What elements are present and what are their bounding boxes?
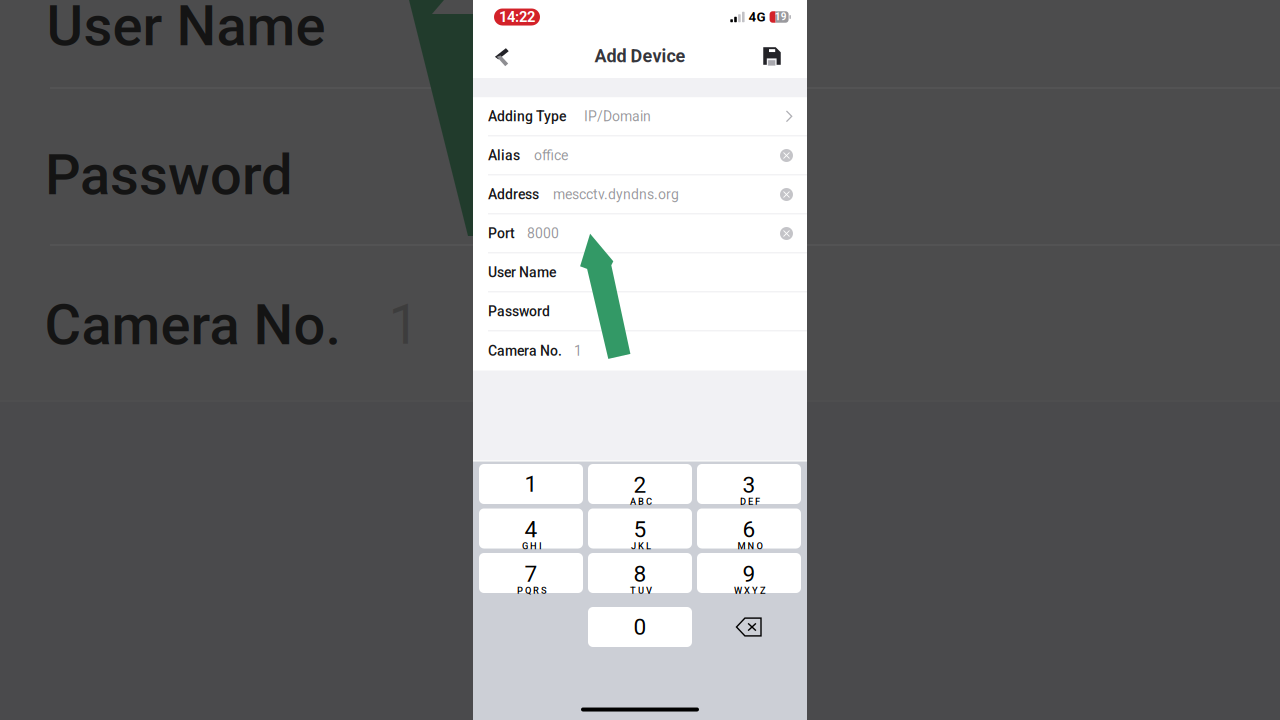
button[interactable]: 9 <box>697 553 801 593</box>
staticText: 2 <box>633 472 646 498</box>
staticText: IP/Domain <box>584 108 651 125</box>
staticText: 4 <box>524 516 537 543</box>
staticText: 9 <box>742 561 755 587</box>
button[interactable]: 0 <box>588 607 692 647</box>
staticText: 3 <box>742 472 755 498</box>
staticText: 1 <box>574 343 582 359</box>
staticText: DEF <box>740 496 760 507</box>
staticText: GHI <box>522 540 542 551</box>
staticText: MNO <box>737 540 762 551</box>
staticText: TUV <box>630 585 652 596</box>
staticText: 19 <box>775 11 787 23</box>
staticText: 8 <box>633 561 646 587</box>
staticText: User Name <box>488 264 556 281</box>
staticText: office <box>534 147 568 164</box>
button[interactable]: Adding Type <box>473 97 807 136</box>
button[interactable]: User Name <box>473 253 807 292</box>
button[interactable]: 6 <box>697 508 801 548</box>
button[interactable]: Camera No. <box>473 331 807 370</box>
button[interactable]: Delete <box>697 607 801 647</box>
button[interactable]: 2 <box>588 464 692 504</box>
button[interactable]: 5 <box>588 508 692 548</box>
staticText: User Name <box>46 0 325 59</box>
staticText: Camera No. <box>488 343 562 359</box>
staticText: mescctv.dyndns.org <box>553 186 679 203</box>
staticText: WXYZ <box>734 585 766 596</box>
button[interactable]: 7 <box>479 553 583 593</box>
staticText: Alias <box>488 147 520 164</box>
staticText: 7 <box>524 561 537 587</box>
staticText: 14:22 <box>499 8 535 26</box>
staticText: 5 <box>633 516 646 543</box>
staticText: Address <box>488 186 539 203</box>
button[interactable]: Port <box>473 214 807 253</box>
staticText: ABC <box>630 496 652 507</box>
staticText: 1 <box>524 471 537 497</box>
staticText: 6 <box>742 516 755 543</box>
staticText: 8000 <box>527 225 559 242</box>
button[interactable]: 3 <box>697 464 801 504</box>
staticText: JKL <box>631 540 651 551</box>
button[interactable]: 8 <box>588 553 692 593</box>
staticText: Adding Type <box>488 108 566 125</box>
button[interactable]: Save <box>750 34 794 78</box>
staticText: 4G <box>749 9 766 25</box>
button[interactable]: Address <box>473 175 807 214</box>
button[interactable]: Password <box>473 292 807 331</box>
staticText: Password <box>488 303 550 320</box>
button[interactable]: Alias <box>473 136 807 175</box>
staticText: Add Device <box>594 45 685 67</box>
staticText: 1 <box>388 293 419 357</box>
button[interactable]: Back <box>480 34 524 78</box>
staticText: Port <box>488 225 515 242</box>
staticText: Password <box>45 142 293 208</box>
staticText: PQRS <box>517 585 547 596</box>
staticText: Camera No. <box>44 292 341 358</box>
button[interactable]: 1 <box>479 464 583 504</box>
button[interactable]: 4 <box>479 508 583 548</box>
staticText: 0 <box>633 614 646 640</box>
